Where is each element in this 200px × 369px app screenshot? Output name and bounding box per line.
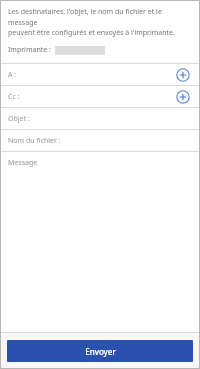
button[interactable]: Objet : [0,107,200,129]
staticText: A : [8,70,17,80]
button[interactable]: Ajouter A : [174,66,192,84]
button[interactable]: Ajouter Cc : [174,88,192,106]
staticText: Cc : [8,92,20,102]
staticText: Objet : [8,114,30,124]
staticText: Nom du fichier : [8,136,61,146]
button[interactable]: Cc : [0,85,200,107]
button[interactable]: Message [0,151,200,332]
button[interactable]: A : [0,63,200,85]
staticText: Envoyer [85,346,116,357]
staticText: Les destinataires, l'objet, le nom du fi… [8,7,192,37]
button[interactable]: Nom du fichier : [0,129,200,151]
staticText: Message [8,158,38,168]
button[interactable]: Envoyer [7,340,193,362]
staticText: Imprimante : [8,45,51,55]
